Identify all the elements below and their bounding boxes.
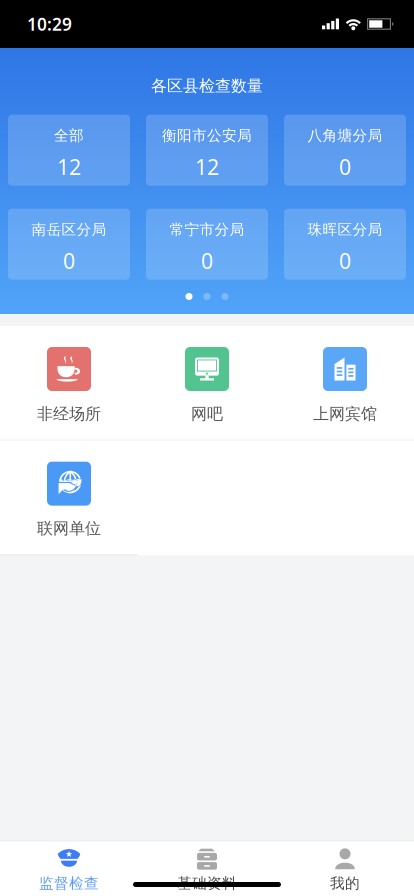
button[interactable]: 联网单位 xyxy=(0,441,138,554)
staticText: 八角塘分局 xyxy=(307,127,382,145)
staticText: 衡阳市公安局 xyxy=(162,127,252,145)
staticText: 12 xyxy=(57,153,81,181)
button[interactable]: 全部 xyxy=(8,115,130,186)
button[interactable]: 衡阳市公安局 xyxy=(146,115,268,186)
button[interactable]: 常宁市分局 xyxy=(146,209,268,280)
staticText: 10:29 xyxy=(27,12,72,35)
staticText: 基础资料 xyxy=(177,874,237,892)
staticText: 监督检查 xyxy=(39,874,99,892)
staticText: 南岳区分局 xyxy=(31,221,106,239)
button[interactable]: 珠晖区分局 xyxy=(284,209,406,280)
staticText: 各区县检查数量 xyxy=(151,76,263,96)
button[interactable]: 八角塘分局 xyxy=(284,115,406,186)
staticText: 12 xyxy=(195,153,219,181)
button[interactable]: 监督检查 xyxy=(0,841,138,896)
staticText: 网吧 xyxy=(191,404,223,424)
staticText: 非经场所 xyxy=(37,404,101,424)
button[interactable]: 非经场所 xyxy=(0,326,138,440)
button[interactable]: 上网宾馆 xyxy=(276,326,414,440)
button[interactable]: 基础资料 xyxy=(138,841,276,896)
button[interactable]: 网吧 xyxy=(138,326,276,440)
staticText: 珠晖区分局 xyxy=(307,221,382,239)
staticText: 0 xyxy=(339,247,351,275)
staticText: 常宁市分局 xyxy=(169,221,244,239)
staticText: 联网单位 xyxy=(37,519,101,538)
staticText: 全部 xyxy=(54,127,84,145)
staticText: 0 xyxy=(63,247,75,275)
staticText: 0 xyxy=(201,247,213,275)
button[interactable]: 南岳区分局 xyxy=(8,209,130,280)
staticText: 我的 xyxy=(330,874,360,892)
button[interactable]: 我的 xyxy=(276,841,414,896)
staticText: 上网宾馆 xyxy=(313,404,377,424)
staticText: 0 xyxy=(339,153,351,181)
